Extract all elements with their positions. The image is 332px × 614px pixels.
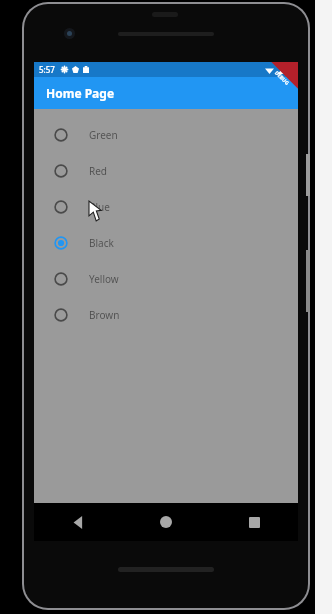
staticText: Black [89,236,114,250]
button[interactable]: Green [34,117,298,153]
staticText: 5:57 [39,64,55,75]
staticText: Blue [89,200,110,214]
button[interactable]: Yellow [34,261,298,297]
staticText: Brown [89,308,120,322]
button[interactable]: Home [122,503,210,541]
staticText: Red [89,164,108,178]
button[interactable]: Blue [34,189,298,225]
staticText: Green [89,128,118,142]
button[interactable]: Black [34,225,298,261]
staticText: DEBUG [273,70,291,87]
button[interactable]: Red [34,153,298,189]
staticText: Yellow [89,272,119,286]
button[interactable]: Recents [210,503,298,541]
button[interactable]: Back [34,503,122,541]
staticText: Home Page [46,85,115,101]
button[interactable]: Brown [34,297,298,333]
